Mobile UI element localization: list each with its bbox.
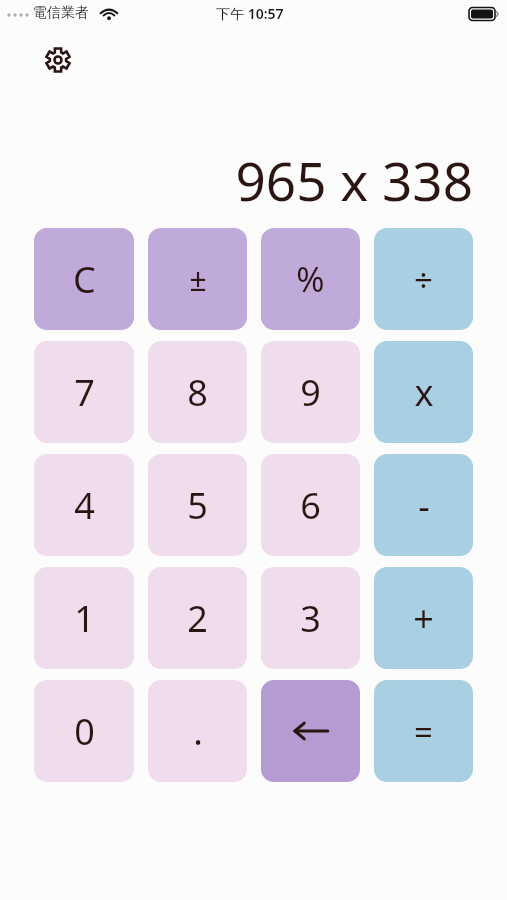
staticText: 8 (187, 368, 208, 417)
button[interactable]: 4 (34, 454, 134, 556)
button[interactable]: x (374, 341, 473, 443)
button[interactable]: . (148, 680, 247, 782)
staticText: . (193, 707, 203, 756)
button[interactable]: + (374, 567, 473, 669)
button[interactable]: 5 (148, 454, 247, 556)
staticText: 9 (300, 368, 321, 417)
staticText: ± (189, 259, 207, 300)
button[interactable]: 2 (148, 567, 247, 669)
button[interactable]: % (261, 228, 360, 330)
staticText: 6 (300, 481, 321, 530)
button[interactable]: Backspace (261, 680, 360, 782)
button[interactable]: - (374, 454, 473, 556)
button[interactable]: 7 (34, 341, 134, 443)
staticText: = (414, 709, 433, 754)
button[interactable]: Settings (36, 38, 80, 82)
staticText: 1 (74, 594, 95, 643)
button[interactable]: ÷ (374, 228, 473, 330)
staticText: 3 (300, 594, 321, 643)
button[interactable]: 1 (34, 567, 134, 669)
staticText: x (414, 368, 434, 417)
staticText: % (296, 256, 325, 302)
staticText: 7 (74, 368, 95, 417)
button[interactable]: 9 (261, 341, 360, 443)
staticText: + (413, 594, 434, 643)
button[interactable]: ± (148, 228, 247, 330)
button[interactable]: C (34, 228, 134, 330)
button[interactable]: 0 (34, 680, 134, 782)
staticText: 5 (187, 481, 208, 530)
staticText: 下午 10:57 (216, 4, 284, 23)
button[interactable]: = (374, 680, 473, 782)
staticText: 965 x 338 (235, 144, 473, 216)
staticText: 電信業者 (33, 4, 89, 22)
staticText: ÷ (414, 257, 433, 302)
button[interactable]: 6 (261, 454, 360, 556)
staticText: 2 (187, 594, 208, 643)
staticText: C (73, 255, 96, 304)
button[interactable]: 3 (261, 567, 360, 669)
staticText: - (418, 481, 430, 530)
staticText: 0 (74, 707, 95, 756)
button[interactable]: 8 (148, 341, 247, 443)
staticText: 4 (74, 481, 95, 530)
